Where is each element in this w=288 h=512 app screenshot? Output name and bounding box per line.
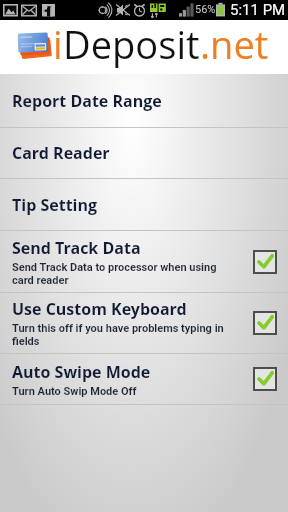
- staticText: 5:11 PM: [230, 1, 286, 19]
- staticText: Use Custom Keyboard: [12, 298, 187, 320]
- button[interactable]: Tip Setting: [0, 179, 288, 230]
- button[interactable]: Toggle option: [253, 250, 277, 274]
- button[interactable]: Report Date Range: [0, 74, 288, 127]
- staticText: Report Date Range: [12, 90, 162, 112]
- staticText: 56%: [195, 3, 216, 16]
- staticText: Deposit: [63, 18, 200, 70]
- button[interactable]: Toggle option: [253, 311, 277, 335]
- button[interactable]: Auto Swipe Mode: [0, 354, 288, 404]
- staticText: fields: [12, 335, 40, 348]
- staticText: card reader: [12, 274, 69, 287]
- staticText: Send Track Data: [12, 237, 141, 259]
- staticText: .net: [200, 18, 269, 70]
- button[interactable]: Use Custom Keyboard: [0, 293, 288, 353]
- staticText: Send Track Data to processor when using: [12, 261, 217, 274]
- staticText: i: [53, 18, 63, 70]
- button[interactable]: Card Reader: [0, 128, 288, 178]
- staticText: Turn this off if you have problems typin…: [12, 322, 224, 335]
- staticText: Tip Setting: [12, 194, 98, 216]
- staticText: Card Reader: [12, 142, 110, 164]
- staticText: Auto Swipe Mode: [12, 361, 151, 383]
- staticText: Turn Auto Swip Mode Off: [12, 385, 137, 398]
- button[interactable]: Send Track Data: [0, 231, 288, 292]
- button[interactable]: Toggle option: [253, 367, 277, 391]
